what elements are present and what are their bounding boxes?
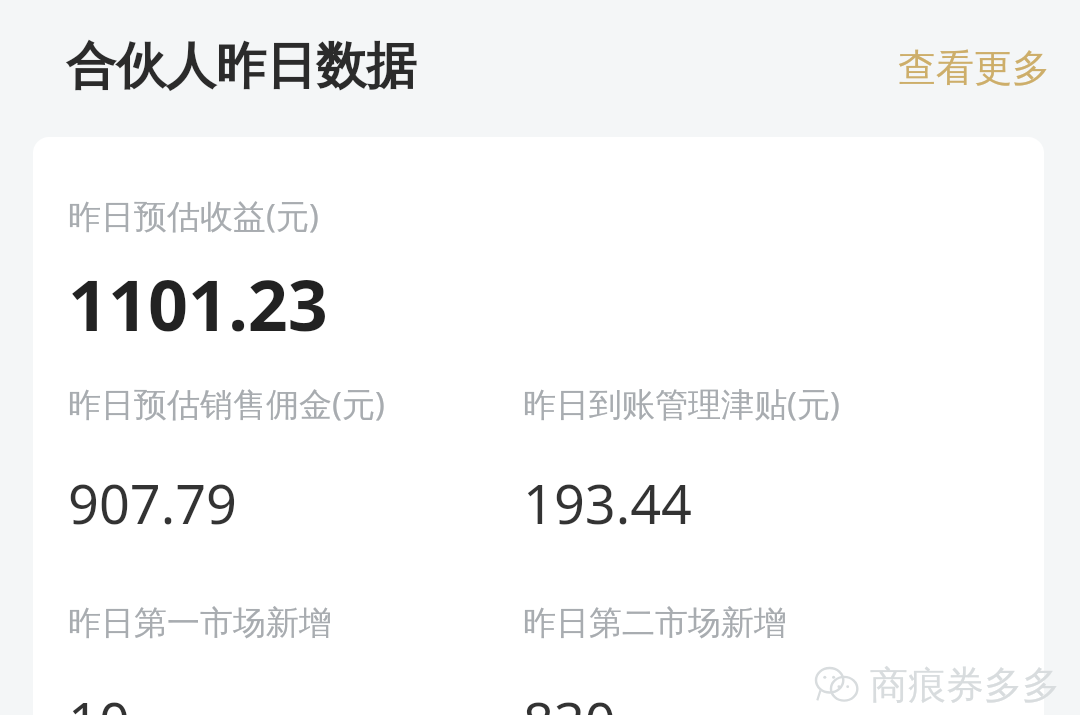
staticText: 查看更多 xyxy=(898,44,1050,92)
staticText: 10 xyxy=(68,684,130,715)
staticText: 907.79 xyxy=(68,466,237,540)
staticText: 昨日预估收益(元) xyxy=(68,193,319,238)
staticText: 193.44 xyxy=(523,466,692,540)
other: WeChat logo xyxy=(816,668,860,702)
button[interactable]: 昨日第一市场新增 xyxy=(68,602,523,715)
staticText: 昨日第一市场新增 xyxy=(68,602,332,644)
staticText: 830 xyxy=(523,684,616,715)
staticText: 合伙人昨日数据 xyxy=(66,35,416,98)
button[interactable]: 昨日预估销售佣金(元) xyxy=(68,381,523,540)
staticText: 昨日预估销售佣金(元) xyxy=(68,381,385,426)
staticText: 昨日到账管理津贴(元) xyxy=(523,381,840,426)
button[interactable]: 昨日预估收益(元) xyxy=(33,137,1044,715)
button[interactable]: 昨日第二市场新增 xyxy=(523,602,1044,715)
button[interactable]: 查看更多 xyxy=(868,32,1080,104)
staticText: 商痕券多多 xyxy=(870,661,1060,709)
staticText: 昨日第二市场新增 xyxy=(523,602,787,644)
button[interactable]: 昨日到账管理津贴(元) xyxy=(523,381,1044,540)
staticText: 1101.23 xyxy=(68,256,328,351)
